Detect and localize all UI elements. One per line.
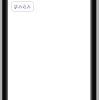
button[interactable]: 読み込み (11, 1, 34, 12)
staticText: 読み込み (14, 4, 31, 9)
